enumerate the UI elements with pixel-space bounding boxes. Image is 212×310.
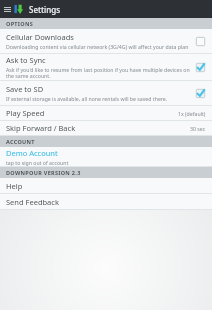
staticText: OPTIONS — [6, 20, 34, 27]
staticText: ACCOUNT — [6, 138, 35, 145]
staticText: Ask to Sync — [6, 55, 46, 65]
staticText: DOWNPOUR VERSION 2.3 — [6, 169, 81, 176]
button[interactable]: Send Feedback — [0, 194, 212, 209]
button[interactable]: Ask to Sync — [0, 54, 212, 80]
button[interactable]: Cellular Downloads — [0, 29, 212, 53]
staticText: Skip Forward / Back — [6, 123, 76, 133]
button[interactable]: Demo Account — [0, 147, 212, 166]
staticText: Ask if you'd like to resume from last po… — [6, 66, 191, 80]
staticText: Settings — [29, 4, 61, 15]
staticText: tap to sign out of account — [6, 159, 69, 166]
staticText: Demo Account — [6, 148, 58, 158]
staticText: Send Feedback — [6, 197, 59, 207]
staticText: 1x (default) — [178, 110, 206, 117]
staticText: Save to SD — [6, 84, 44, 94]
button[interactable]: Play Speed — [0, 106, 212, 120]
button[interactable]: Open navigation drawer — [0, 2, 14, 16]
staticText: 30 sec — [190, 125, 206, 132]
staticText: Play Speed — [6, 108, 45, 118]
staticText: If external storage is available, all no… — [6, 95, 168, 102]
button[interactable]: Save to SD — [0, 81, 212, 105]
staticText: Cellular Downloads — [6, 32, 74, 42]
button[interactable]: Help — [0, 178, 212, 193]
button[interactable]: Skip Forward / Back — [0, 121, 212, 135]
staticText: Help — [6, 181, 23, 191]
staticText: Downloading content via cellular network… — [6, 43, 189, 50]
